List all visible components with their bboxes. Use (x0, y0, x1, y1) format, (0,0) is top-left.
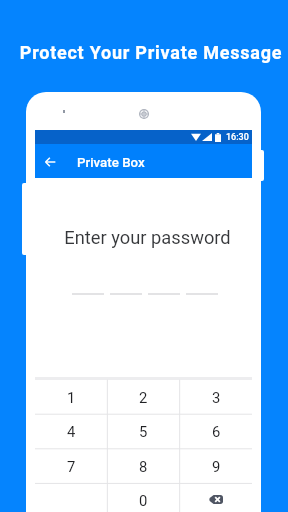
staticText: 5 (139, 423, 148, 440)
staticText: 1 (67, 389, 76, 406)
staticText: 3 (212, 389, 221, 406)
other: Backspace (209, 495, 223, 504)
button[interactable] (35, 483, 107, 512)
staticText: 2 (139, 389, 148, 406)
staticText: 0 (139, 492, 148, 509)
button[interactable]: 9 (180, 449, 252, 484)
staticText: 8 (139, 458, 148, 475)
button[interactable]: 8 (107, 449, 179, 484)
button[interactable]: 2 (107, 380, 179, 415)
staticText: Private Box (77, 155, 145, 171)
staticText: 9 (212, 458, 221, 475)
staticText: 4 (67, 423, 76, 440)
staticText: 7 (67, 458, 76, 475)
button[interactable]: 1 (35, 380, 107, 415)
button[interactable]: Backspace (180, 483, 252, 512)
button[interactable]: 4 (35, 414, 107, 449)
staticText: Enter your password (39, 227, 256, 248)
button[interactable]: 0 (107, 483, 179, 512)
button[interactable]: 5 (107, 414, 179, 449)
button[interactable]: Back (40, 149, 61, 173)
button[interactable]: 6 (180, 414, 252, 449)
staticText: 16:30 (226, 132, 249, 143)
button[interactable]: 3 (180, 380, 252, 415)
button[interactable]: Back (35, 144, 252, 178)
staticText: 6 (212, 423, 221, 440)
button[interactable]: 7 (35, 449, 107, 484)
staticText: Protect Your Private Message (7, 42, 288, 63)
